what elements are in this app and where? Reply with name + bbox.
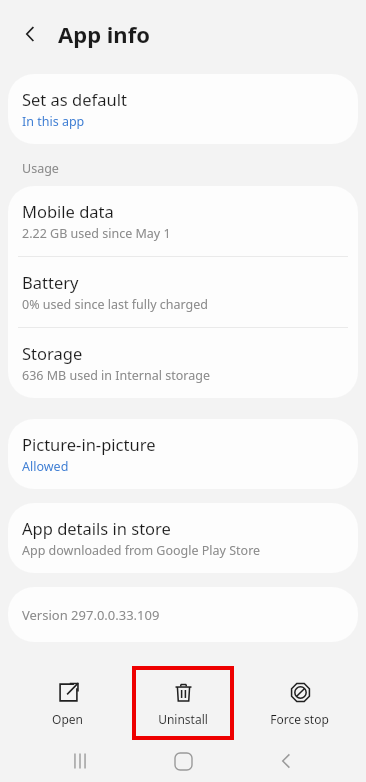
staticText: App info: [58, 19, 150, 49]
button[interactable]: Uninstall: [134, 668, 232, 738]
button[interactable]: Picture-in-picture: [8, 419, 358, 489]
staticText: Mobile data: [22, 200, 114, 222]
button[interactable]: Set as default: [8, 74, 358, 144]
staticText: Picture-in-picture: [22, 433, 156, 455]
button[interactable]: Home: [160, 740, 206, 782]
staticText: Open: [52, 711, 83, 727]
button[interactable]: Mobile data: [8, 186, 358, 256]
button[interactable]: App details in store: [8, 503, 358, 573]
staticText: Storage: [22, 342, 83, 364]
staticText: App downloaded from Google Play Store: [22, 542, 261, 559]
staticText: Usage: [22, 160, 59, 177]
staticText: In this app: [22, 113, 85, 130]
button[interactable]: Back: [12, 16, 48, 52]
staticText: 2.22 GB used since May 1: [22, 225, 171, 242]
other: Open: [58, 682, 79, 703]
other: Force stop: [290, 682, 311, 703]
staticText: Version 297.0.0.33.109: [22, 606, 160, 624]
staticText: Allowed: [22, 458, 69, 475]
other: Uninstall: [173, 682, 194, 703]
button[interactable]: Open: [18, 668, 116, 738]
staticText: 0% used since last fully charged: [22, 296, 209, 313]
staticText: 636 MB used in Internal storage: [22, 367, 210, 384]
button[interactable]: Battery: [8, 257, 358, 327]
staticText: Battery: [22, 271, 79, 293]
staticText: Force stop: [270, 711, 329, 727]
staticText: Set as default: [22, 88, 127, 110]
button[interactable]: Storage: [8, 328, 358, 398]
button[interactable]: Back: [263, 740, 309, 782]
staticText: App details in store: [22, 517, 171, 539]
button[interactable]: Force stop: [250, 668, 348, 738]
staticText: Uninstall: [158, 711, 208, 727]
button[interactable]: Recents: [57, 740, 103, 782]
